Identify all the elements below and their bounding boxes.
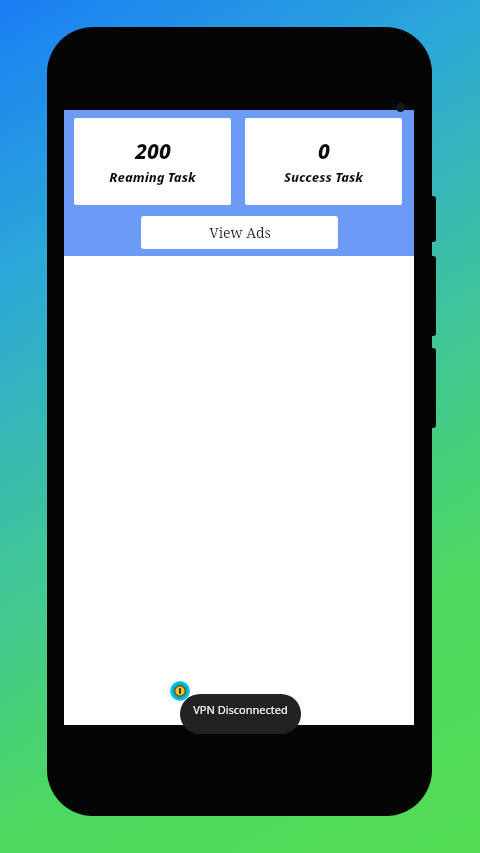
button[interactable]: 200 <box>74 118 231 205</box>
staticText: 200 <box>135 137 171 166</box>
staticText: VPN Disconnected <box>193 702 288 717</box>
staticText: Success Task <box>284 168 363 186</box>
staticText: View Ads <box>209 223 271 242</box>
other: VPN status <box>170 681 190 701</box>
button[interactable]: 0 <box>245 118 402 205</box>
staticText: 0 <box>318 137 330 166</box>
button[interactable]: View Ads <box>141 216 338 249</box>
staticText: Reaming Task <box>109 168 196 186</box>
